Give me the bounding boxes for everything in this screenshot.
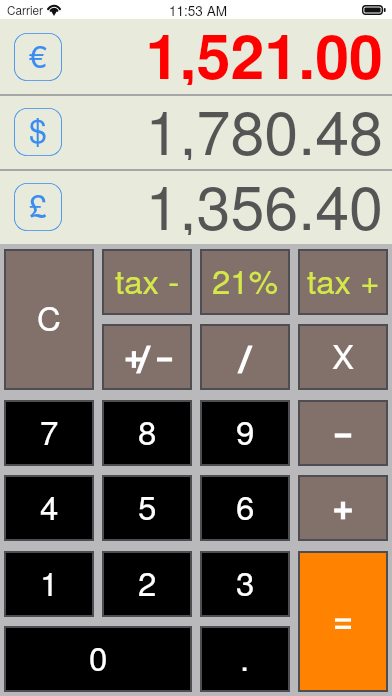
button[interactable]: 8 bbox=[104, 402, 190, 464]
button[interactable]: Equals bbox=[300, 553, 386, 690]
staticText: 11:53 AM bbox=[2, 0, 392, 19]
button[interactable]: Multiply bbox=[300, 326, 386, 388]
staticText: 9 bbox=[236, 407, 255, 454]
button[interactable]: Minus bbox=[300, 402, 386, 464]
button[interactable]: tax + bbox=[300, 251, 386, 313]
button[interactable]: 21% bbox=[202, 251, 288, 313]
button[interactable]: tax - bbox=[104, 251, 190, 313]
button[interactable]: 5 bbox=[104, 477, 190, 539]
staticText: 8 bbox=[138, 407, 157, 454]
staticText: 21% bbox=[212, 256, 279, 303]
button[interactable]: 1 bbox=[6, 553, 92, 615]
staticText: $ bbox=[29, 108, 47, 152]
staticText: 1,356.40 bbox=[0, 160, 383, 235]
staticText: 7 bbox=[40, 407, 59, 454]
staticText: 5 bbox=[138, 482, 157, 529]
staticText: 1 bbox=[40, 558, 59, 605]
staticText: X bbox=[332, 331, 355, 378]
staticText: 0 bbox=[89, 633, 108, 680]
staticText: Carrier bbox=[7, 1, 44, 18]
button[interactable]: 9 bbox=[202, 402, 288, 464]
staticText: 1,780.48 bbox=[0, 85, 383, 160]
button[interactable]: Plus bbox=[300, 477, 386, 539]
button[interactable]: 3 bbox=[202, 553, 288, 615]
button[interactable]: Select currency $ bbox=[14, 108, 62, 156]
button[interactable]: 6 bbox=[202, 477, 288, 539]
staticText: 6 bbox=[236, 482, 255, 529]
button[interactable]: Select currency £ bbox=[14, 183, 62, 231]
button[interactable]: Plus minus sign bbox=[104, 326, 190, 388]
button[interactable]: Select currency € bbox=[14, 33, 62, 81]
staticText: £ bbox=[29, 183, 47, 227]
button[interactable]: Decimal point bbox=[202, 628, 288, 690]
button[interactable]: 7 bbox=[6, 402, 92, 464]
staticText: 4 bbox=[40, 482, 59, 529]
staticText: 2 bbox=[138, 558, 157, 605]
staticText: 3 bbox=[236, 558, 255, 605]
button[interactable]: 0 bbox=[6, 628, 190, 690]
staticText: C bbox=[37, 293, 61, 340]
staticText: € bbox=[29, 33, 47, 77]
button[interactable]: C bbox=[6, 251, 92, 388]
staticText: tax + bbox=[307, 256, 380, 303]
button[interactable]: 2 bbox=[104, 553, 190, 615]
staticText: . bbox=[240, 633, 250, 680]
staticText: tax - bbox=[115, 256, 180, 303]
button[interactable]: Divide bbox=[202, 326, 288, 388]
button[interactable]: 4 bbox=[6, 477, 92, 539]
staticText: 1,521.00 bbox=[0, 10, 383, 85]
